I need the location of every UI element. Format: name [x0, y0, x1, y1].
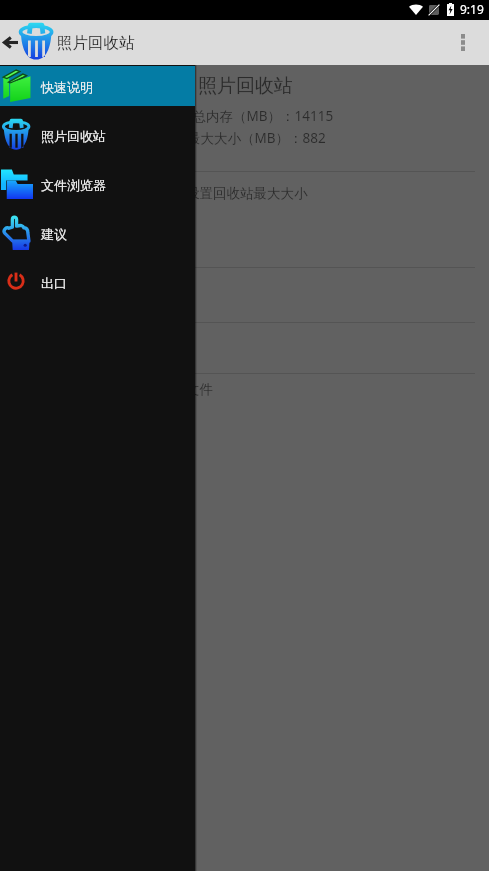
button[interactable]: 照片回收站 — [0, 111, 195, 160]
button[interactable] — [0, 268, 489, 322]
staticText: 自动清理文件 — [132, 381, 213, 398]
button[interactable]: 出口 — [0, 258, 195, 307]
button[interactable]: 快速说明 — [0, 62, 195, 111]
staticText: 手动设置回收站最大大小 — [159, 185, 308, 202]
staticText: 回收站的最大大小（MB）：882 — [133, 129, 326, 147]
staticText: 照片回收站 — [41, 128, 106, 144]
button[interactable]: 文件浏览器 — [0, 160, 195, 209]
staticText: 照片回收站 — [57, 33, 135, 53]
button[interactable]: 建议 — [0, 209, 195, 258]
button[interactable]: 手动设置回收站最大大小 — [0, 172, 489, 267]
button[interactable] — [0, 323, 489, 373]
staticText: 建议 — [41, 226, 67, 242]
staticText: 出口 — [41, 275, 67, 291]
staticText: 照片回收站 — [198, 74, 293, 98]
staticText: 9:19 — [460, 1, 484, 17]
staticText: 文件浏览器 — [41, 177, 106, 193]
staticText: 快速说明 — [41, 79, 93, 95]
staticText: 系统的总内存（MB）：14115 — [152, 107, 334, 125]
button[interactable]: More options — [445, 20, 489, 65]
button[interactable]: 自动清理文件 — [0, 374, 489, 430]
button[interactable]: Back — [0, 20, 19, 65]
